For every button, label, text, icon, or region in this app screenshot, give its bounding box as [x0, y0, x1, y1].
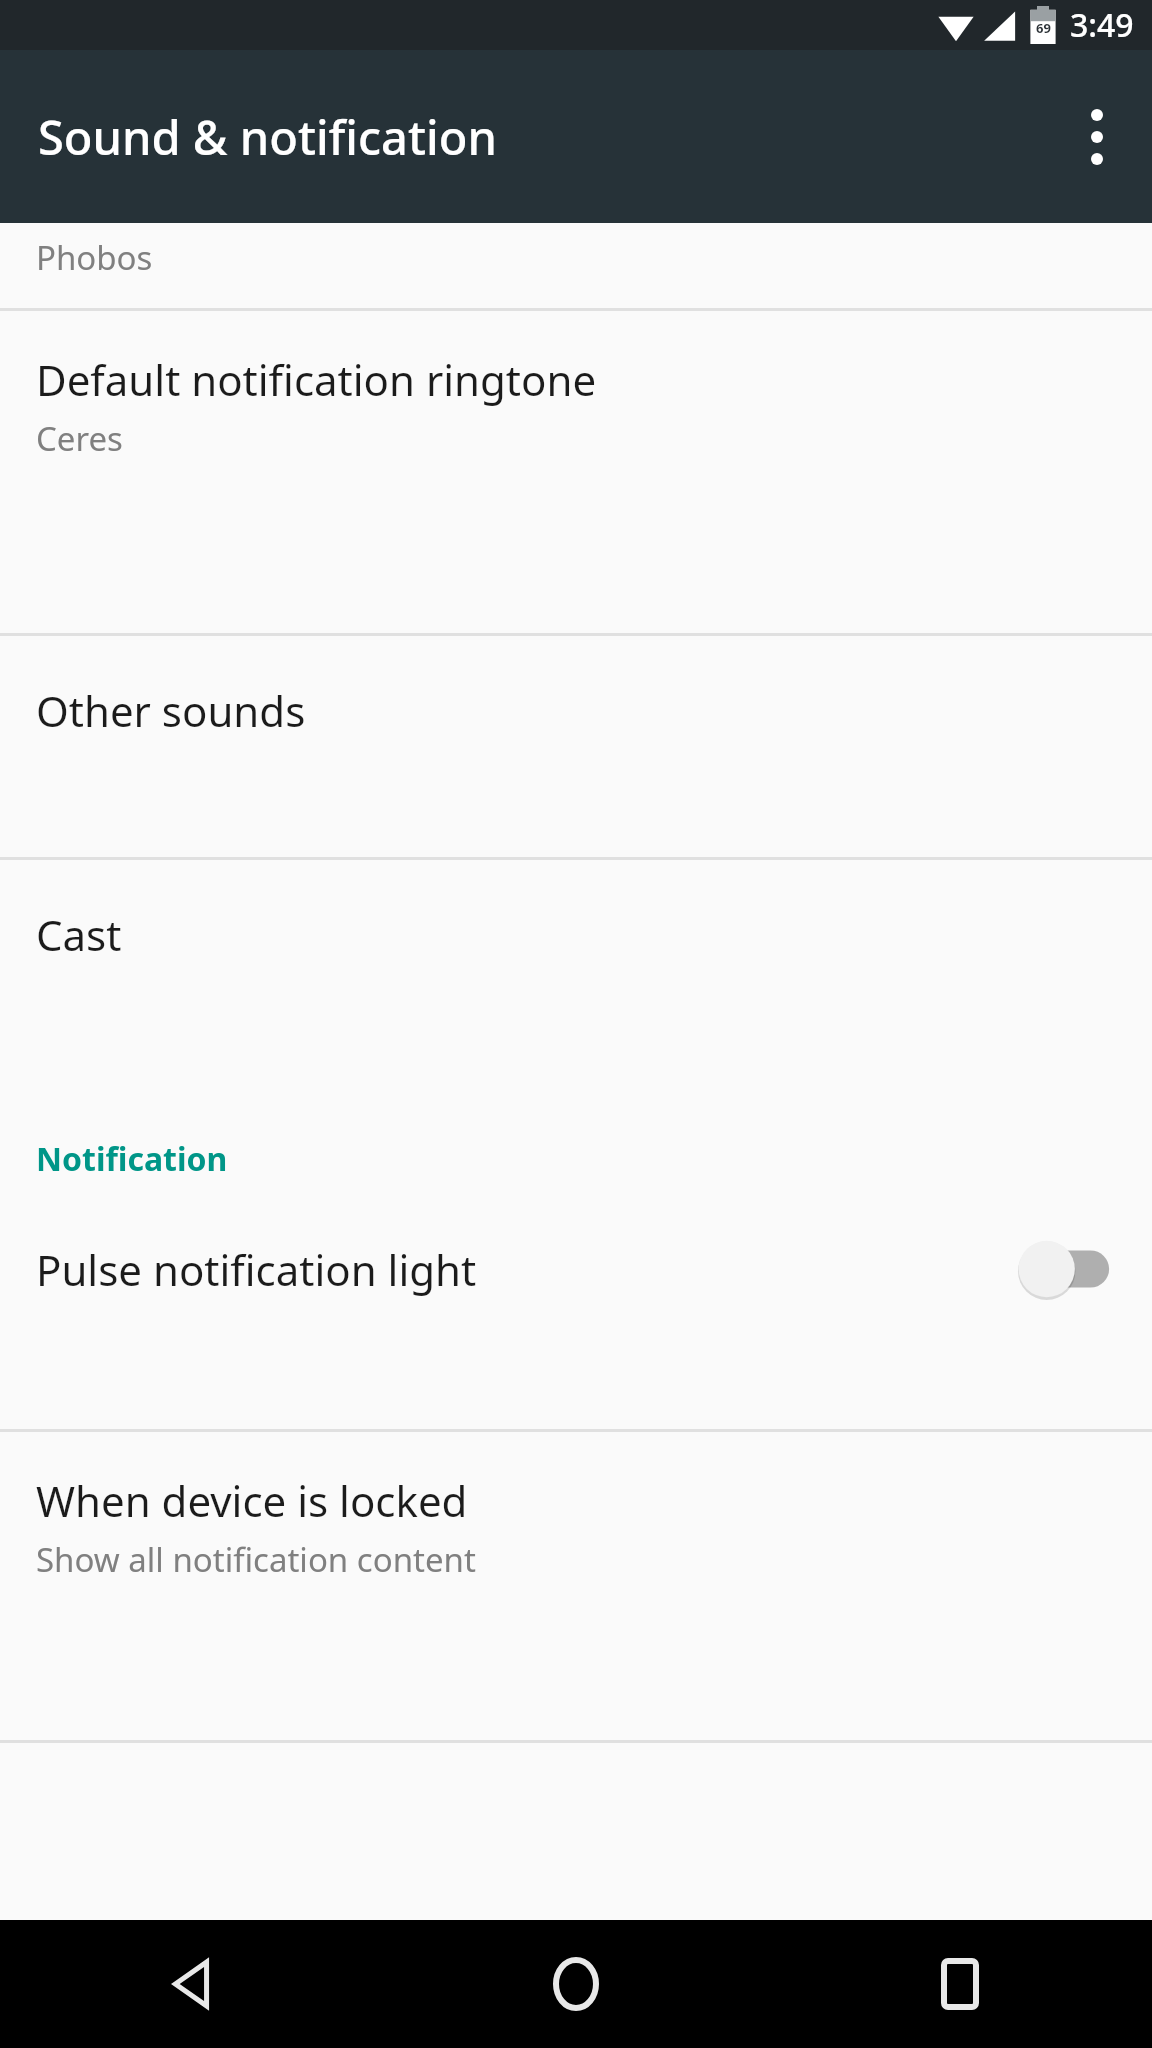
staticText: Notification: [36, 1137, 228, 1181]
button[interactable]: When device is locked: [0, 1432, 1152, 1740]
staticText: Ceres: [36, 416, 123, 461]
button[interactable]: Default notification ringtone: [0, 311, 1152, 633]
button[interactable]: Home: [384, 1920, 768, 2048]
button[interactable]: Pulse notification light: [0, 1197, 1152, 1429]
staticText: Pulse notification light: [36, 1241, 1016, 1298]
button[interactable]: More options: [1042, 82, 1152, 192]
staticText: Cast: [36, 906, 122, 963]
button[interactable]: Pulse notification light toggle: [1016, 1237, 1112, 1301]
button[interactable]: Back: [0, 1920, 384, 2048]
staticText: Sound & notification: [38, 105, 497, 169]
button[interactable]: Phobos: [0, 223, 1152, 308]
staticText: Phobos: [36, 235, 153, 280]
button[interactable]: Recent apps: [768, 1920, 1152, 2048]
staticText: Other sounds: [36, 682, 306, 739]
staticText: 3:49: [1070, 3, 1134, 47]
staticText: Default notification ringtone: [36, 351, 597, 408]
button[interactable]: Other sounds: [0, 636, 1152, 857]
button[interactable]: Cast: [0, 860, 1152, 1115]
staticText: When device is locked: [36, 1472, 468, 1529]
staticText: Show all notification content: [36, 1537, 476, 1582]
staticText: 69: [1036, 19, 1051, 37]
